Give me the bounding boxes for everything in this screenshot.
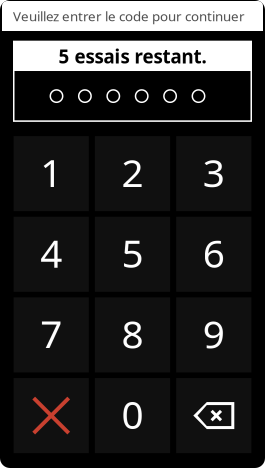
- button[interactable]: 7: [14, 297, 89, 372]
- button[interactable]: 5: [95, 217, 170, 292]
- staticText: 0: [121, 388, 143, 440]
- button[interactable]: 0: [95, 378, 170, 453]
- staticText: 3: [203, 146, 225, 198]
- button[interactable]: Annuler: [14, 378, 89, 453]
- staticText: Veuillez entrer le code pour continuer: [13, 7, 245, 25]
- staticText: 4: [40, 227, 62, 278]
- staticText: 8: [121, 308, 143, 359]
- button[interactable]: Effacer: [176, 378, 251, 453]
- button[interactable]: 3: [176, 136, 251, 211]
- staticText: 6: [203, 227, 225, 278]
- staticText: 5 essais restant.: [58, 44, 206, 69]
- staticText: 5: [121, 227, 143, 278]
- staticText: 7: [40, 308, 62, 359]
- button[interactable]: 4: [14, 217, 89, 292]
- staticText: 2: [121, 146, 143, 198]
- button[interactable]: 6: [176, 217, 251, 292]
- staticText: 1: [40, 146, 62, 198]
- button[interactable]: 9: [176, 297, 251, 372]
- button[interactable]: 8: [95, 297, 170, 372]
- button[interactable]: 1: [14, 136, 89, 211]
- button[interactable]: 2: [95, 136, 170, 211]
- staticText: 9: [203, 308, 225, 359]
